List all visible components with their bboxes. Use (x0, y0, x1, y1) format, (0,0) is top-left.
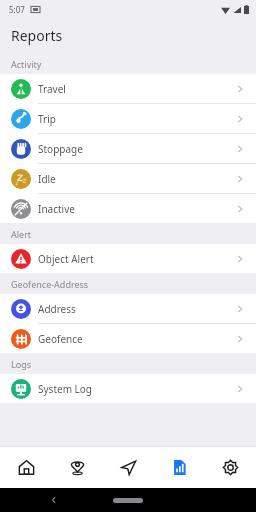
staticText: System Log (38, 382, 93, 396)
staticText: Reports (11, 26, 63, 45)
staticText: 5:07 (9, 4, 25, 15)
staticText: Address (38, 302, 76, 316)
staticText: Stoppage (38, 142, 83, 156)
staticText: Logs (11, 358, 32, 370)
button[interactable]: Settings (205, 446, 256, 488)
button[interactable]: Trip (0, 104, 256, 133)
staticText: Object Alert (38, 252, 94, 266)
staticText: Travel (38, 82, 66, 96)
button[interactable]: Geofence (0, 324, 256, 353)
button[interactable]: Navigate (103, 446, 154, 488)
button[interactable]: Object Alert (0, 244, 256, 273)
staticText: Inactive (38, 202, 75, 216)
button[interactable]: Places (52, 446, 103, 488)
button[interactable]: Idle (0, 164, 256, 193)
button[interactable]: Stoppage (0, 134, 256, 163)
staticText: Trip (38, 112, 56, 126)
staticText: Alert (11, 228, 32, 240)
button[interactable]: Inactive (0, 194, 256, 223)
button[interactable]: Reports (154, 446, 205, 488)
button[interactable]: Address (0, 294, 256, 323)
staticText: Geofence (38, 332, 83, 346)
staticText: Idle (38, 172, 56, 186)
staticText: Geofence-Address (11, 278, 89, 290)
button[interactable]: Travel (0, 74, 256, 103)
button[interactable]: System Log (0, 374, 256, 403)
staticText: Activity (11, 58, 42, 70)
button[interactable]: Home (0, 446, 52, 488)
